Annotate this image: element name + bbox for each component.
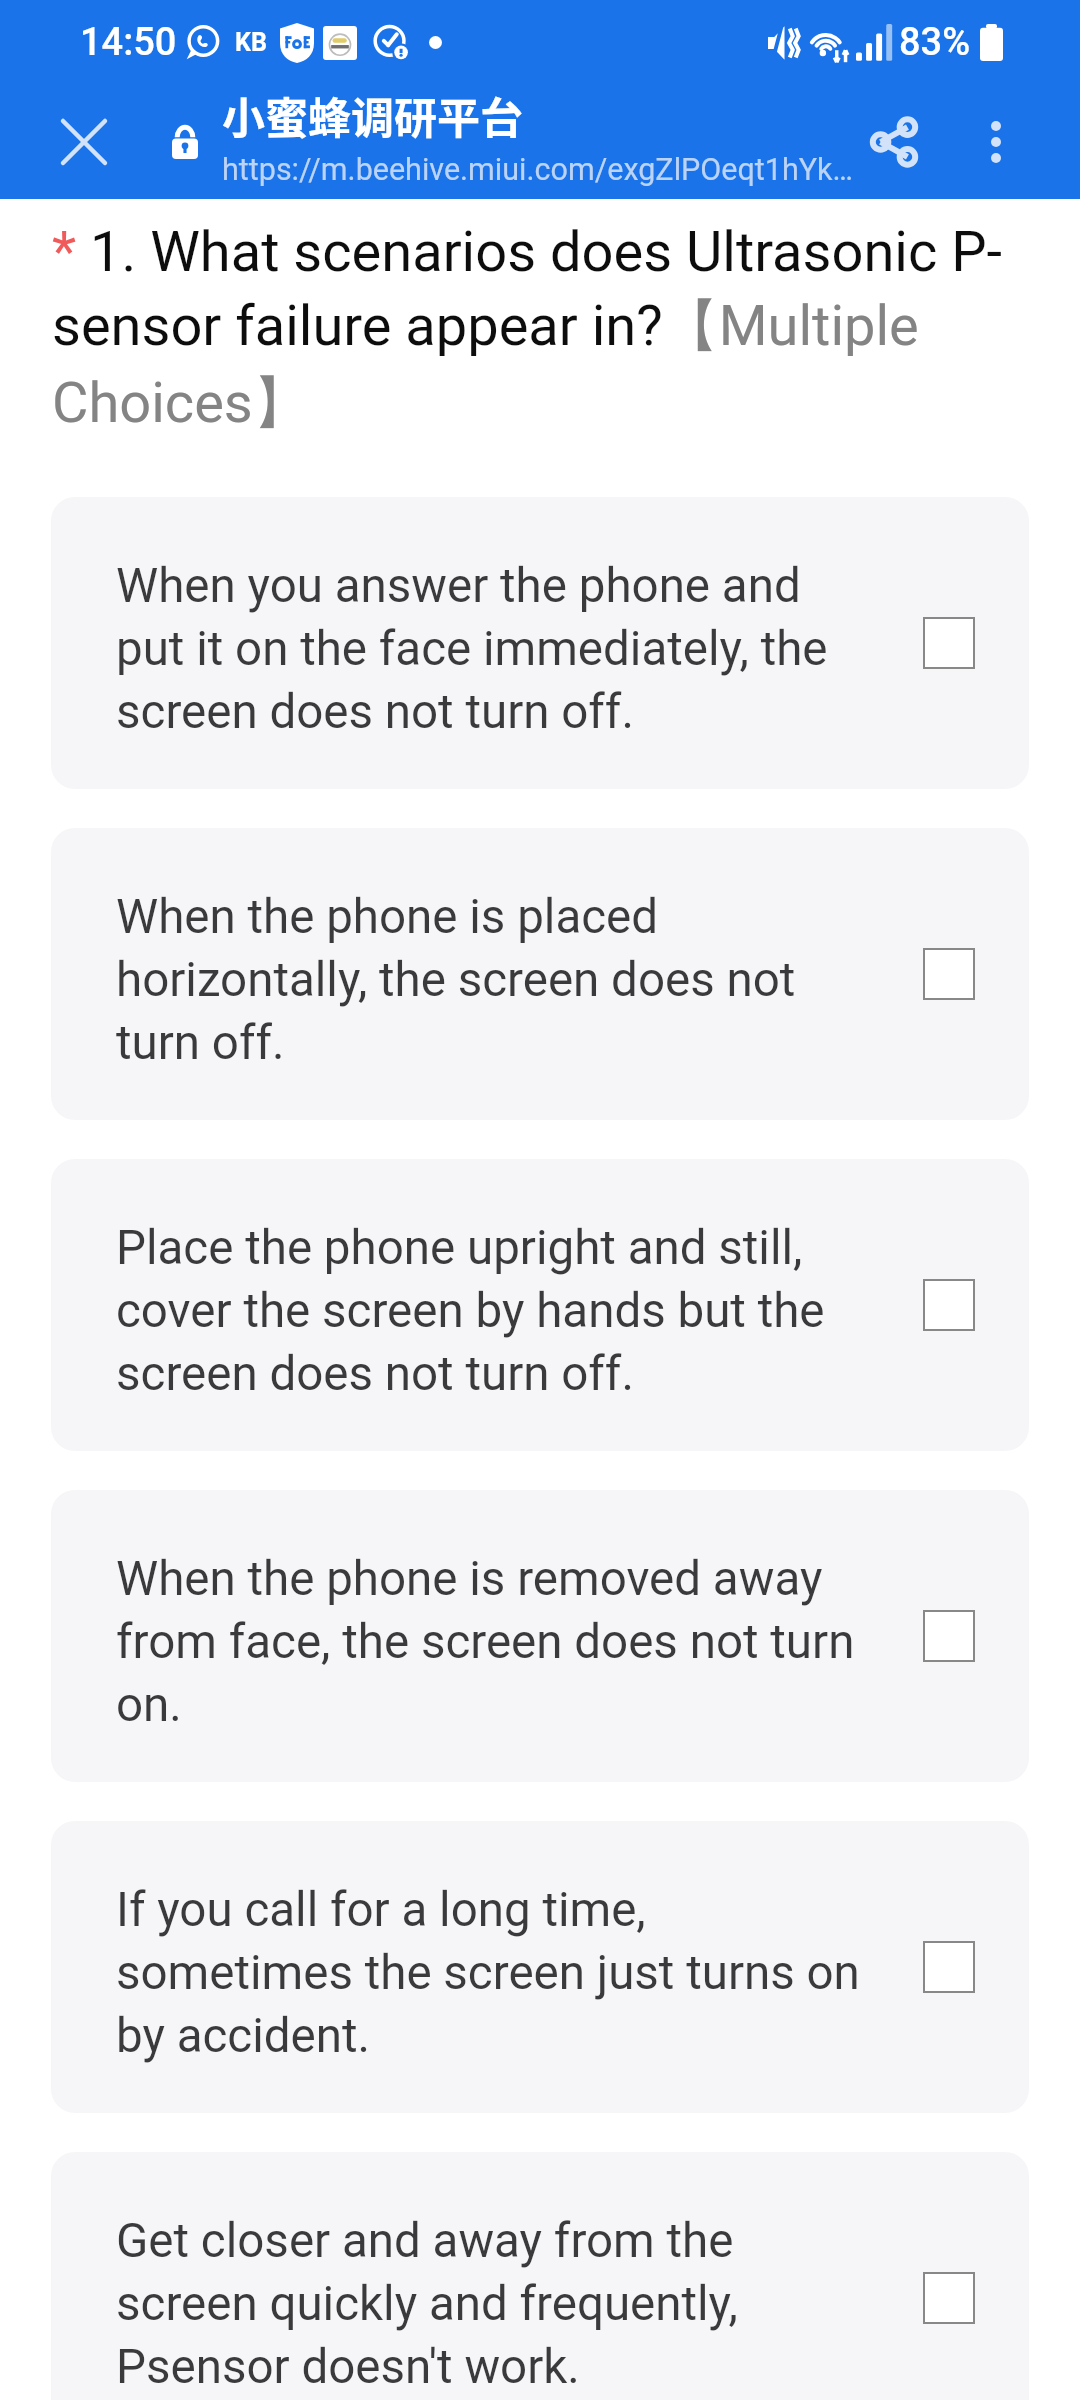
staticText: When the phone is removed away from face… bbox=[116, 1551, 868, 1732]
staticText: https://m.beehive.miui.com/exgZlPOeqt1hY… bbox=[222, 152, 853, 188]
button[interactable]: Close bbox=[40, 98, 128, 186]
button[interactable]: If you call for a long time, sometimes t… bbox=[51, 1821, 1029, 2113]
staticText: Get closer and away from the screen quic… bbox=[116, 2213, 868, 2394]
staticText: 14:50 bbox=[80, 20, 177, 65]
button[interactable]: Select option bbox=[923, 948, 975, 1000]
staticText: When the phone is placed horizontally, t… bbox=[116, 889, 868, 1070]
button[interactable]: Get closer and away from the screen quic… bbox=[51, 2152, 1029, 2400]
button[interactable]: Select option bbox=[923, 2272, 975, 2324]
staticText: * 1. What scenarios does Ultrasonic P-se… bbox=[52, 219, 1032, 438]
staticText: KB bbox=[235, 28, 267, 57]
button[interactable]: Select option bbox=[923, 1610, 975, 1662]
button[interactable]: Place the phone upright and still, cover… bbox=[51, 1159, 1029, 1451]
button[interactable]: When the phone is removed away from face… bbox=[51, 1490, 1029, 1782]
button[interactable]: When the phone is placed horizontally, t… bbox=[51, 828, 1029, 1120]
button[interactable]: Select option bbox=[923, 1279, 975, 1331]
staticText: 小蜜蜂调研平台 bbox=[222, 84, 523, 146]
staticText: If you call for a long time, sometimes t… bbox=[116, 1882, 868, 2063]
button[interactable]: Select option bbox=[923, 1941, 975, 1993]
staticText: When you answer the phone and put it on … bbox=[116, 558, 868, 739]
staticText: 83% bbox=[899, 20, 971, 65]
button[interactable]: Share bbox=[850, 98, 938, 186]
button[interactable]: More options bbox=[952, 98, 1040, 186]
button[interactable]: Select option bbox=[923, 617, 975, 669]
button[interactable]: When you answer the phone and put it on … bbox=[51, 497, 1029, 789]
staticText: Place the phone upright and still, cover… bbox=[116, 1220, 868, 1401]
